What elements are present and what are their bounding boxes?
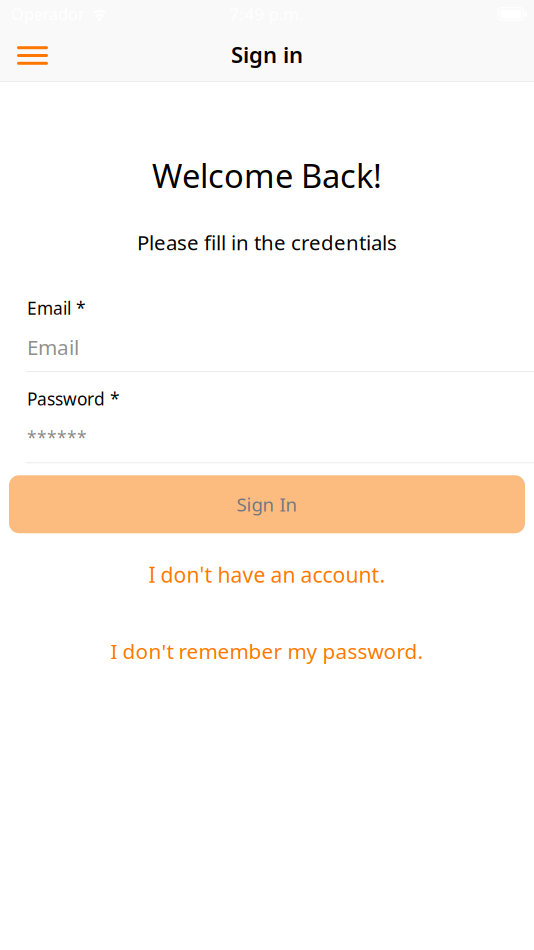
staticText: Email [27,333,79,361]
staticText: Please fill in the credentials [137,228,397,256]
staticText: Sign In [236,491,297,517]
button[interactable]: I don't have an account. [140,556,393,593]
staticText: Password * [27,387,120,411]
staticText: ****** [27,426,87,449]
staticText: I don't remember my password. [110,637,423,665]
button[interactable]: Sign In [9,475,525,533]
button[interactable]: I don't remember my password. [102,633,431,669]
staticText: Welcome Back! [152,153,382,197]
staticText: Sign in [231,39,303,69]
button[interactable]: Menu [0,27,72,82]
staticText: I don't have an account. [148,560,385,589]
staticText: Email * [27,296,86,320]
